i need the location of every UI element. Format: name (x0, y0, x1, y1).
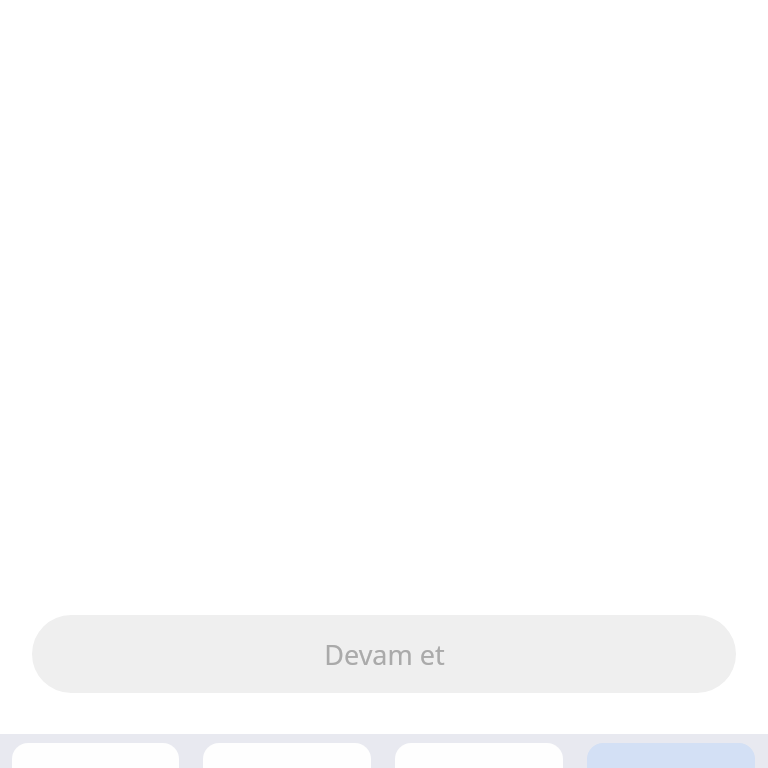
button[interactable]: Key 3 (395, 743, 563, 768)
staticText: Devam et (324, 636, 445, 673)
button[interactable]: Key 2 (203, 743, 371, 768)
button[interactable]: Devam et (32, 615, 736, 693)
button[interactable]: Enter key (587, 743, 755, 768)
button[interactable]: Key 1 (12, 743, 179, 768)
